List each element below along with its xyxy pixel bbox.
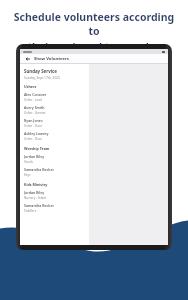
staticText: Nursery - Infant	[24, 196, 47, 200]
staticText: Alex Conover	[24, 92, 47, 97]
staticText: Usher - Door	[24, 124, 43, 128]
staticText: Vocals	[24, 160, 33, 164]
staticText: Keys	[24, 173, 31, 177]
button[interactable]: Jordan Riley	[24, 153, 85, 166]
button[interactable]: Samantha Becker	[24, 166, 85, 179]
staticText: Usher - Greeter	[24, 111, 46, 115]
button[interactable]: Ashley Lowery	[24, 130, 85, 143]
staticText: Ryan Jones	[24, 118, 43, 123]
staticText: Ushers	[24, 84, 37, 89]
staticText: Usher - Door	[24, 137, 43, 141]
staticText: Show Volunteers	[34, 56, 69, 62]
button[interactable]: Ryan Jones	[24, 117, 85, 130]
staticText: Avery Smith	[24, 105, 45, 110]
staticText: Usher - Lead	[24, 98, 42, 102]
staticText: Samantha Becker	[24, 203, 54, 208]
staticText: Jordan Riley	[24, 154, 45, 159]
staticText: Toddlers	[24, 209, 37, 213]
staticText: their assigned team roles	[27, 40, 161, 54]
staticText: Jordan Riley	[24, 190, 45, 195]
button[interactable]: Alex Conover	[24, 91, 85, 104]
button[interactable]: Jordan Riley	[24, 189, 85, 202]
button[interactable]: Avery Smith	[24, 104, 85, 117]
button[interactable]: Samantha Becker	[24, 202, 85, 215]
staticText: Samantha Becker	[24, 167, 54, 172]
staticText: Ashley Lowery	[24, 131, 49, 136]
staticText: Sunday, Sept 17th, 2023	[24, 76, 60, 80]
staticText: Worship Team	[24, 146, 50, 151]
staticText: Kids Ministry	[24, 182, 48, 187]
staticText: Schedule volunteers according to	[10, 10, 178, 38]
staticText: Sunday Service	[24, 68, 57, 74]
button[interactable]: Back	[24, 55, 31, 62]
